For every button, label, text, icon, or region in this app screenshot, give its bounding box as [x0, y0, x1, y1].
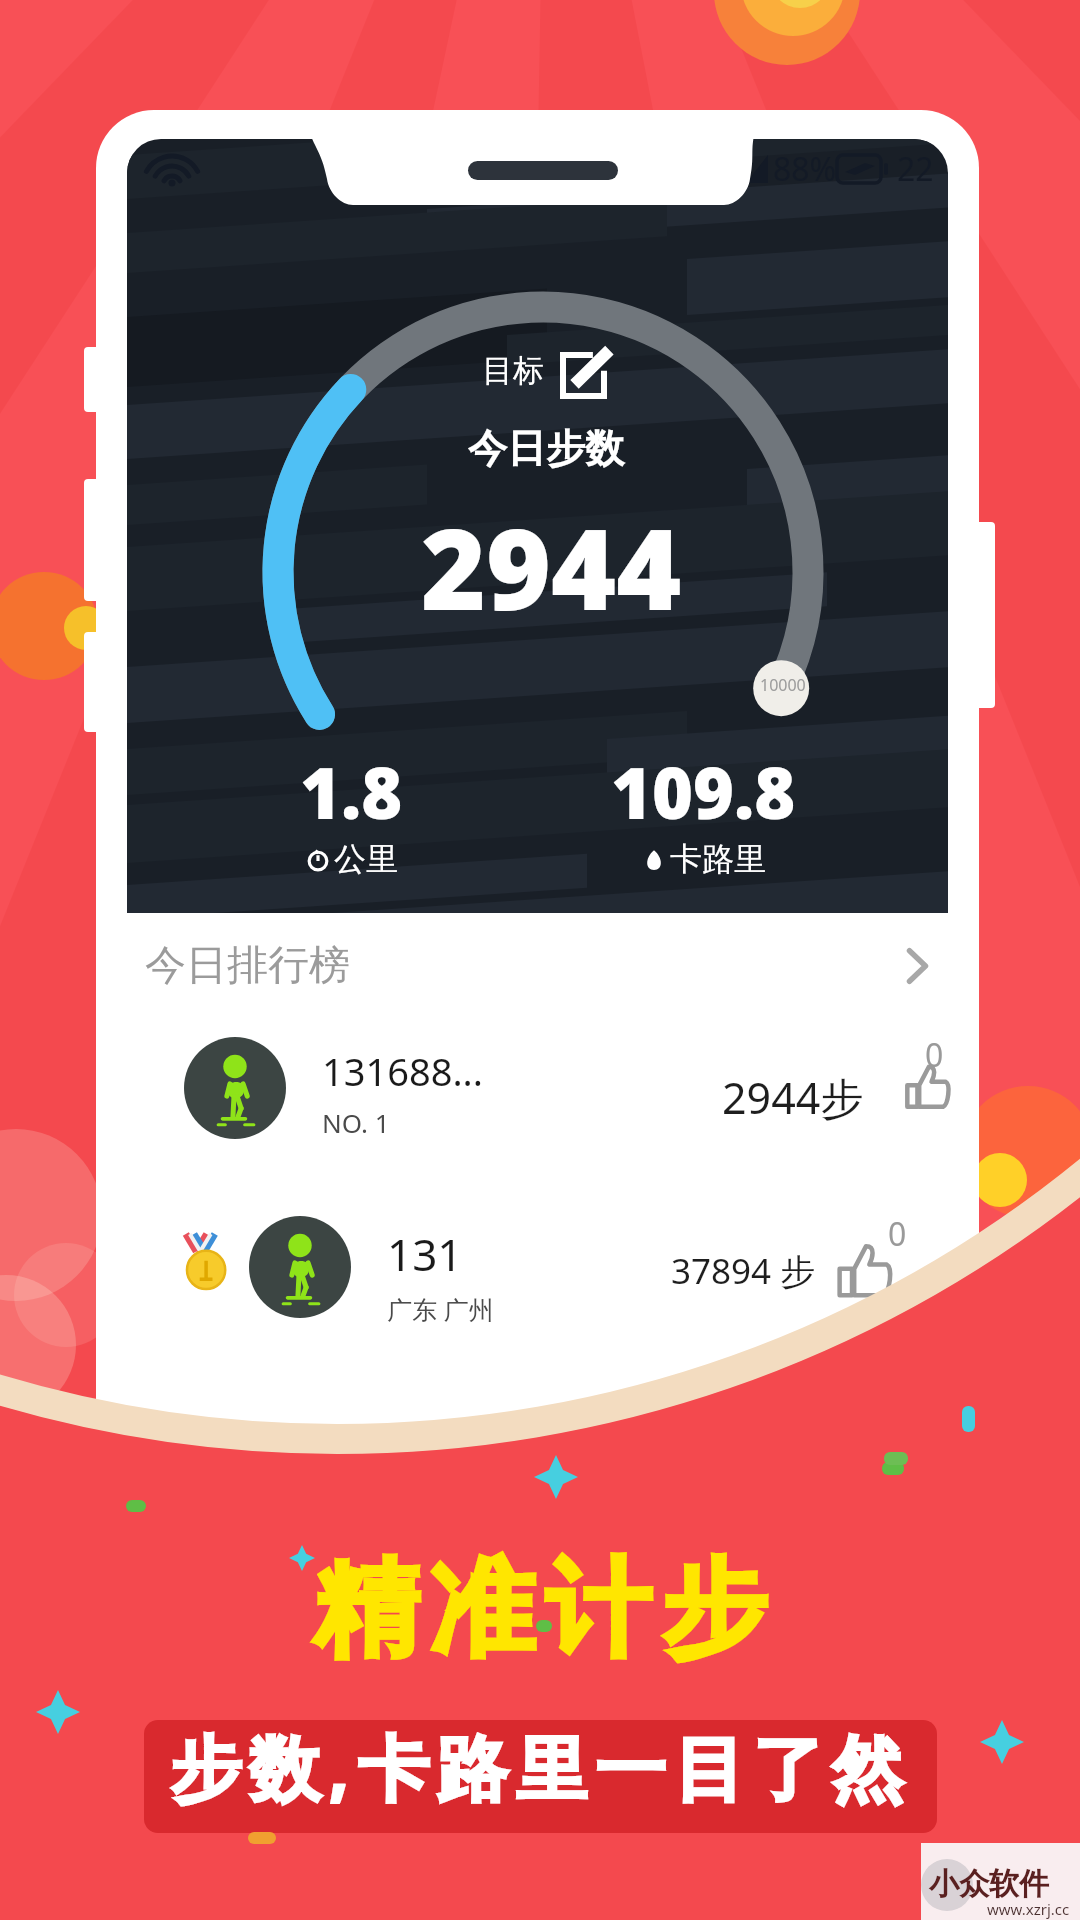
staticText: NO. 1 [322, 1105, 390, 1140]
staticText: 2944步 [722, 1068, 864, 1127]
staticText: 2944 [421, 491, 682, 642]
other: More [901, 949, 935, 983]
button[interactable]: 109.8 [553, 744, 853, 879]
staticText: 10000 [760, 674, 806, 696]
staticText: 今日排行榜 [145, 940, 350, 992]
staticText: 131688... [322, 1045, 483, 1097]
staticText: www.xzrj.cc [987, 1899, 1070, 1919]
staticText: 1.8 [300, 744, 403, 839]
staticText: 卡路里 [670, 839, 766, 879]
staticText: 37894 步 [671, 1247, 816, 1295]
button[interactable]: 131688... [127, 1037, 979, 1141]
staticText: 0 [925, 1033, 944, 1077]
staticText: 今日步数 [468, 424, 624, 473]
staticText: 步数,卡路里一目了然 [170, 1720, 911, 1815]
staticText: 0 [888, 1212, 907, 1256]
staticText: 小众软件 [929, 1865, 1049, 1903]
staticText: 22 [897, 147, 934, 191]
button[interactable]: 步数,卡路里一目了然 [144, 1720, 937, 1833]
staticText: 公里 [334, 839, 398, 879]
button[interactable]: 1.8 [201, 744, 501, 879]
button[interactable]: 今日排行榜 [127, 913, 979, 1018]
staticText: 109.8 [611, 744, 796, 839]
staticText: 目标 [482, 351, 544, 390]
other: Edit goal [560, 352, 607, 399]
button[interactable]: 目标 [482, 347, 607, 394]
staticText: 广东 广州 [387, 1292, 494, 1326]
staticText: 131 [387, 1224, 463, 1284]
button[interactable]: Like [906, 1065, 950, 1109]
staticText: 精准计步 [308, 1544, 772, 1676]
button[interactable]: 131 [127, 1216, 979, 1320]
button[interactable]: Like [838, 1244, 892, 1298]
staticText: 88% [773, 147, 837, 191]
